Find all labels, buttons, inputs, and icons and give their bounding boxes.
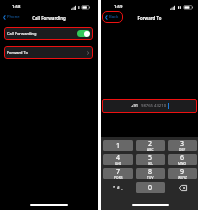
staticText: Call Forwarding [7,31,37,36]
staticText: 1:58 [12,4,21,10]
staticText: MNO [178,162,187,165]
button[interactable]: 1 [103,140,133,151]
staticText: DEF [179,148,186,151]
staticText: 7 [116,168,121,177]
staticText: ABC [147,148,154,151]
button[interactable]: 9 [168,168,197,179]
staticText: Forward To [7,50,28,55]
staticText: TUV [147,176,154,179]
button[interactable]: Phone [2,14,21,20]
staticText: PQRS [114,176,123,179]
button[interactable]: 5 [136,154,165,165]
button[interactable]: +91 [103,100,196,112]
staticText: Forward To [101,15,198,21]
staticText: +91 [131,103,139,109]
staticText: 1:59 [114,4,123,10]
staticText: 3 [180,140,185,149]
staticText: Phone [7,14,20,20]
button[interactable]: 0 [136,182,165,193]
button[interactable]: Call Forwarding [5,28,92,39]
button[interactable]: 2 [136,140,165,151]
staticText: 4 [116,154,121,163]
button[interactable]: 3 [168,140,197,151]
staticText: 0 [148,183,153,193]
staticText: Back [109,14,119,20]
button[interactable]: 8 [136,168,165,179]
button[interactable]: Forward To [5,47,92,58]
staticText: * # , [113,185,123,190]
button[interactable]: 7 [103,168,133,179]
button[interactable]: Backspace [168,182,197,193]
staticText: WXYZ [178,176,188,179]
staticText: 2 [148,140,153,149]
staticText: 1 [116,141,121,151]
button[interactable]: Back [105,14,119,20]
staticText: JKL [148,162,153,165]
staticText: 5 [148,154,153,163]
staticText: GHI [115,162,122,165]
button[interactable]: Symbols [103,182,133,193]
staticText: 6 [180,154,185,163]
staticText: 98765 43210 [141,103,167,109]
button[interactable]: 6 [168,154,197,165]
staticText: 9 [180,168,185,177]
staticText: Call Forwarding [0,15,98,21]
button[interactable]: 4 [103,154,133,165]
staticText: 8 [148,168,153,177]
